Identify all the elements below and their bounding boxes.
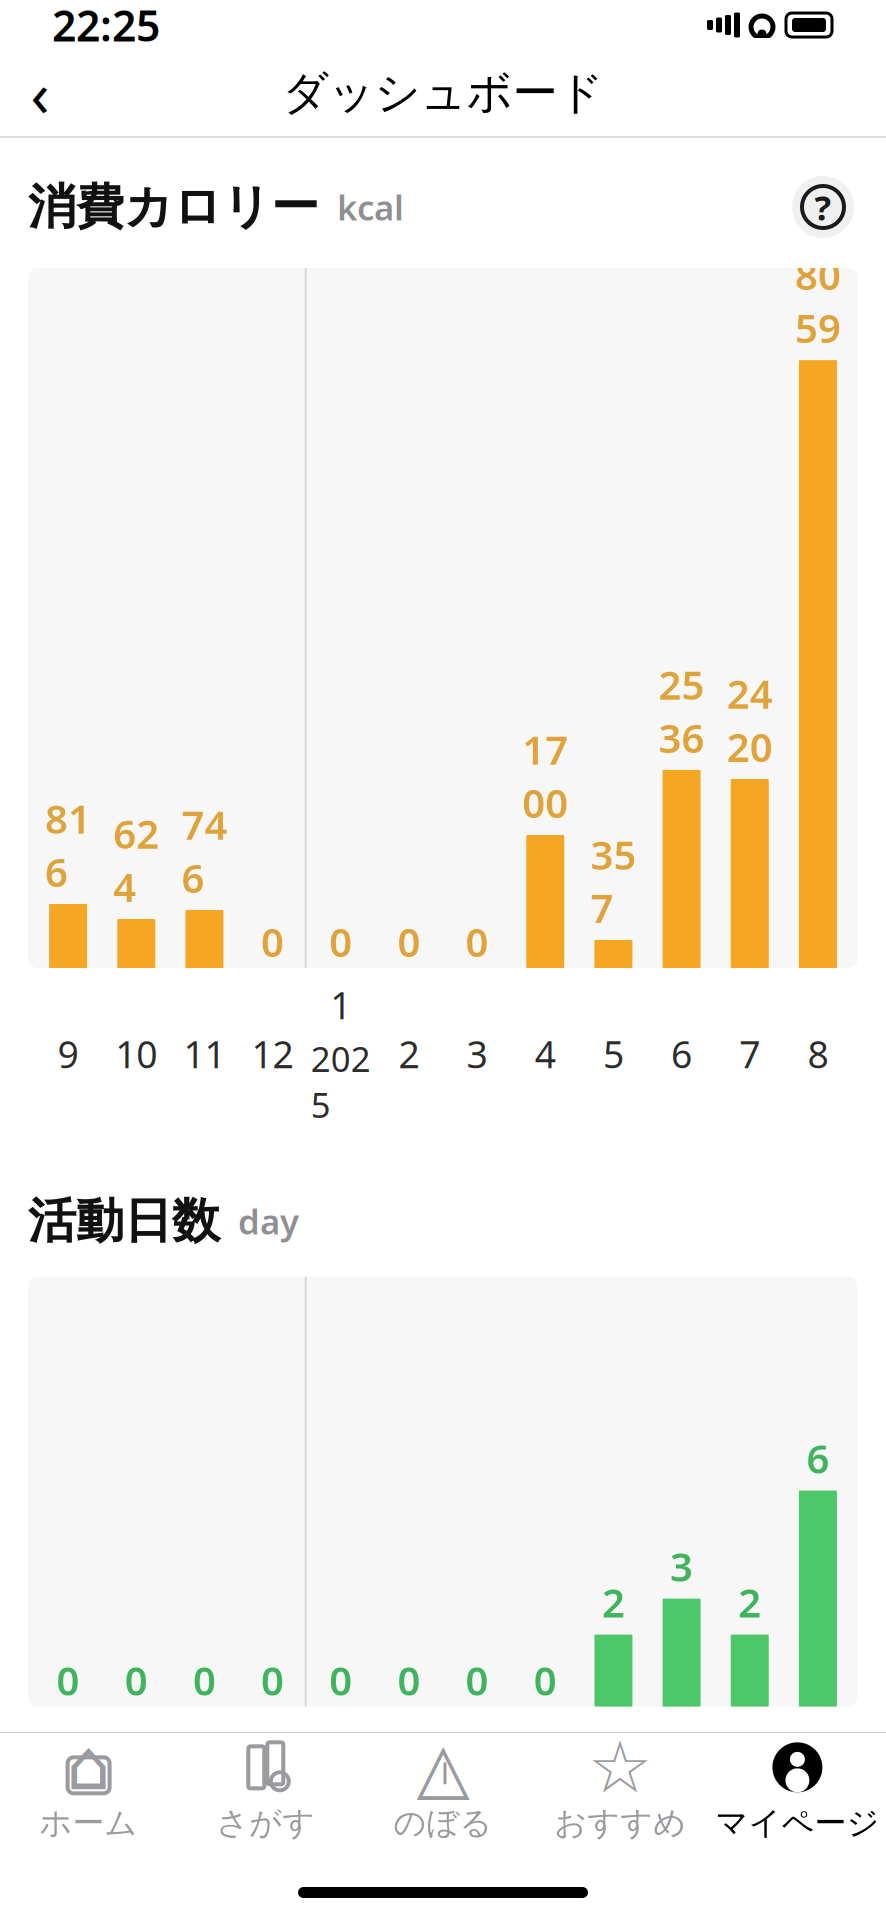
staticText: 0	[329, 1653, 352, 1707]
staticText: ☆	[588, 1726, 653, 1808]
staticText: 3	[467, 1029, 488, 1079]
staticText: 8059	[795, 248, 841, 354]
staticText: day	[220, 1198, 299, 1244]
staticText: 11	[183, 1029, 225, 1079]
staticText: 0	[261, 1653, 284, 1707]
staticText: マイページ	[715, 1803, 879, 1843]
button[interactable]: ヘルプ	[788, 172, 858, 242]
staticText: のぼる	[393, 1803, 492, 1843]
staticText: さがす	[216, 1803, 315, 1843]
staticText: 2	[398, 1029, 419, 1079]
staticText: 8	[807, 1029, 828, 1079]
staticText: 0	[466, 915, 489, 968]
staticText: ダッシュボード	[282, 65, 603, 121]
staticText: 7	[739, 1029, 760, 1079]
staticText: 5	[603, 1029, 624, 1079]
staticText: 4	[535, 1029, 556, 1079]
staticText: 0	[534, 1653, 557, 1707]
staticText: △	[416, 1728, 469, 1807]
staticText: 0	[261, 915, 284, 968]
staticText: 1	[330, 980, 351, 1030]
staticText: 0	[57, 1653, 80, 1707]
staticText: kcal	[319, 184, 404, 230]
button[interactable]: 戻る	[0, 53, 80, 133]
staticText: 2420	[727, 667, 773, 773]
staticText: ⌂	[67, 1726, 111, 1805]
staticText: 624	[113, 807, 159, 913]
staticText: 6	[806, 1431, 829, 1485]
button[interactable]: ☆	[532, 1733, 709, 1851]
staticText: 1700	[522, 723, 568, 829]
staticText: 2	[738, 1575, 761, 1629]
button[interactable]: マイページ	[709, 1733, 886, 1851]
button[interactable]: △	[354, 1733, 532, 1851]
staticText: 活動日数	[28, 1192, 220, 1251]
staticText: 消費カロリー	[28, 177, 319, 236]
staticText: 0	[193, 1653, 216, 1707]
staticText: 9	[58, 1029, 79, 1079]
button[interactable]: さがす	[177, 1733, 354, 1851]
staticText: 22:25	[52, 0, 160, 53]
staticText: おすすめ	[554, 1803, 686, 1843]
staticText: ホーム	[40, 1803, 138, 1843]
staticText: 2536	[659, 658, 705, 764]
staticText: 2025	[311, 1036, 371, 1128]
staticText: 0	[397, 1653, 420, 1707]
staticText: 816	[45, 792, 91, 898]
staticText: ‹	[30, 52, 49, 134]
staticText: 12	[252, 1029, 294, 1079]
staticText: ?	[814, 184, 831, 230]
staticText: 2	[602, 1575, 625, 1629]
staticText: 0	[466, 1653, 489, 1707]
staticText: 0	[125, 1653, 148, 1707]
button[interactable]: ⌂	[0, 1733, 177, 1851]
staticText: 357	[590, 828, 636, 934]
staticText: 3	[670, 1539, 693, 1593]
staticText: 0	[329, 915, 352, 968]
staticText: 0	[397, 915, 420, 968]
staticText: 6	[671, 1029, 692, 1079]
staticText: 10	[115, 1029, 157, 1079]
staticText: 746	[181, 798, 227, 904]
